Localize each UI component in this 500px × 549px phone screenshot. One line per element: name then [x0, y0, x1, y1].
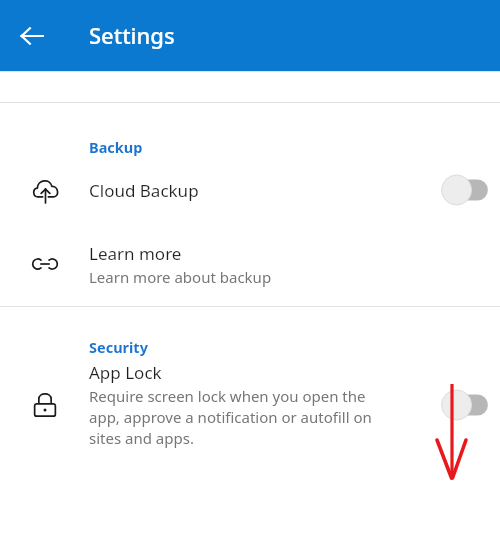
staticText: Cloud Backup: [89, 179, 199, 202]
other: App lock: [30, 390, 60, 420]
button[interactable]: Learn more: [0, 223, 500, 305]
button[interactable]: App lock: [0, 357, 500, 453]
button[interactable]: Toggle: [439, 175, 491, 205]
staticText: Backup: [89, 137, 143, 157]
other: Cloud backup: [30, 175, 60, 205]
button[interactable]: Cloud backup: [0, 157, 500, 223]
staticText: Settings: [89, 20, 175, 50]
other: Learn more: [30, 249, 60, 279]
staticText: Require screen lock when you open the ap…: [89, 386, 372, 449]
staticText: Learn more about backup: [89, 267, 272, 287]
staticText: Learn more: [89, 242, 182, 265]
button[interactable]: Toggle: [439, 390, 491, 420]
staticText: Security: [89, 337, 148, 357]
button[interactable]: Back: [8, 12, 56, 60]
staticText: App Lock: [89, 361, 162, 384]
